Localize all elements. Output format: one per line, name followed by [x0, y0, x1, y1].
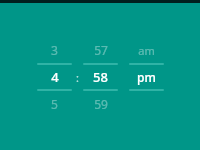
staticText: 3 — [51, 42, 58, 58]
staticText: 4 — [51, 68, 59, 86]
staticText: 5 — [51, 96, 58, 112]
button[interactable]: Hour — [36, 37, 73, 117]
staticText: : — [76, 70, 79, 85]
button[interactable]: Minute — [82, 37, 119, 117]
staticText: 58 — [93, 68, 108, 86]
staticText: pm — [137, 69, 156, 85]
button[interactable]: AM or PM — [128, 37, 165, 117]
staticText: am — [138, 43, 155, 58]
staticText: 59 — [94, 96, 108, 112]
staticText: 57 — [94, 42, 108, 58]
